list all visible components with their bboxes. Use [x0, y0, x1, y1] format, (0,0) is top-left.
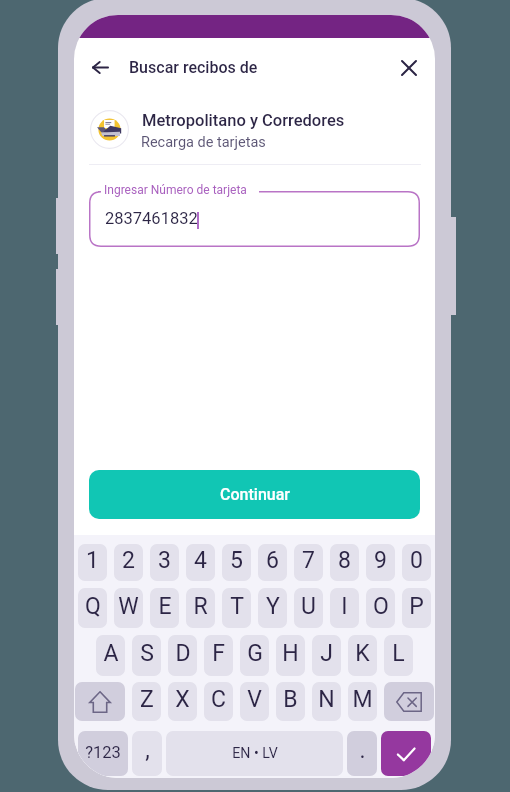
- staticText: C: [211, 686, 226, 713]
- button[interactable]: P: [402, 588, 431, 628]
- button[interactable]: 6: [258, 544, 287, 581]
- staticText: 2: [122, 547, 135, 574]
- staticText: H: [282, 640, 299, 667]
- staticText: P: [409, 593, 424, 620]
- button[interactable]: Y: [258, 588, 287, 628]
- button[interactable]: C: [204, 682, 233, 721]
- button[interactable]: W: [114, 588, 143, 628]
- staticText: I: [341, 593, 348, 620]
- staticText: D: [175, 640, 191, 667]
- button[interactable]: 3: [150, 544, 179, 581]
- staticText: 1: [86, 547, 99, 574]
- staticText: 6: [266, 547, 279, 574]
- staticText: 3: [158, 547, 171, 574]
- button[interactable]: 0: [402, 544, 431, 581]
- staticText: Z: [140, 686, 154, 713]
- button[interactable]: X: [168, 682, 197, 721]
- staticText: R: [193, 593, 208, 620]
- button[interactable]: N: [312, 682, 341, 721]
- staticText: X: [175, 686, 190, 713]
- staticText: K: [355, 640, 370, 667]
- button[interactable]: 2: [114, 544, 143, 581]
- button[interactable]: ?123: [78, 731, 128, 776]
- staticText: 8: [338, 547, 351, 574]
- button[interactable]: Q: [78, 588, 107, 628]
- staticText: 4: [194, 547, 207, 574]
- staticText: U: [301, 593, 316, 620]
- staticText: A: [103, 640, 119, 667]
- button[interactable]: EN • LV: [166, 731, 343, 776]
- button[interactable]: I: [330, 588, 359, 628]
- staticText: F: [212, 640, 225, 667]
- staticText: M: [352, 686, 373, 713]
- button[interactable]: A: [96, 635, 125, 676]
- button[interactable]: F: [204, 635, 233, 676]
- button[interactable]: G: [240, 635, 269, 676]
- staticText: V: [247, 686, 262, 713]
- button[interactable]: H: [276, 635, 305, 676]
- staticText: S: [140, 640, 154, 667]
- button[interactable]: [381, 731, 431, 776]
- staticText: 7: [302, 547, 315, 574]
- button[interactable]: B: [276, 682, 305, 721]
- staticText: E: [158, 593, 172, 620]
- button[interactable]: U: [294, 588, 323, 628]
- staticText: Q: [85, 593, 101, 620]
- button[interactable]: .: [347, 731, 377, 776]
- staticText: 9: [374, 547, 387, 574]
- button[interactable]: 9: [366, 544, 395, 581]
- button[interactable]: 7: [294, 544, 323, 581]
- button[interactable]: T: [222, 588, 251, 628]
- staticText: Y: [266, 593, 280, 620]
- staticText: ,: [145, 737, 150, 764]
- button[interactable]: Close: [387, 46, 430, 89]
- button[interactable]: V: [240, 682, 269, 721]
- staticText: Buscar recibos de: [129, 58, 258, 77]
- button[interactable]: 4: [186, 544, 215, 581]
- staticText: Recarga de tarjetas: [141, 134, 266, 151]
- staticText: G: [247, 640, 263, 667]
- button[interactable]: M: [348, 682, 377, 721]
- button[interactable]: ,: [132, 731, 162, 776]
- button[interactable]: 8: [330, 544, 359, 581]
- staticText: 2837461832: [105, 209, 198, 228]
- staticText: T: [230, 593, 244, 620]
- button[interactable]: R: [186, 588, 215, 628]
- staticText: EN • LV: [232, 745, 278, 762]
- staticText: O: [373, 593, 389, 620]
- staticText: J: [320, 640, 333, 667]
- staticText: 5: [230, 547, 243, 574]
- staticText: 0: [410, 547, 423, 574]
- staticText: ?123: [85, 743, 121, 762]
- staticText: N: [318, 686, 335, 713]
- staticText: B: [283, 686, 298, 713]
- button[interactable]: O: [366, 588, 395, 628]
- button[interactable]: J: [312, 635, 341, 676]
- button[interactable]: Back: [79, 46, 122, 89]
- staticText: L: [392, 640, 405, 667]
- button[interactable]: K: [348, 635, 377, 676]
- button[interactable]: Z: [132, 682, 161, 721]
- button[interactable]: [384, 682, 434, 721]
- button[interactable]: 1: [78, 544, 107, 581]
- button[interactable]: D: [168, 635, 197, 676]
- staticText: Ingresar Número de tarjeta: [104, 183, 247, 197]
- staticText: Continuar: [220, 485, 290, 504]
- button[interactable]: E: [150, 588, 179, 628]
- button[interactable]: S: [132, 635, 161, 676]
- staticText: .: [359, 737, 366, 764]
- staticText: Metropolitano y Corredores: [142, 111, 345, 130]
- staticText: W: [118, 593, 139, 620]
- button[interactable]: 5: [222, 544, 251, 581]
- button[interactable]: Continuar: [89, 470, 420, 519]
- button[interactable]: [75, 682, 125, 721]
- button[interactable]: L: [384, 635, 413, 676]
